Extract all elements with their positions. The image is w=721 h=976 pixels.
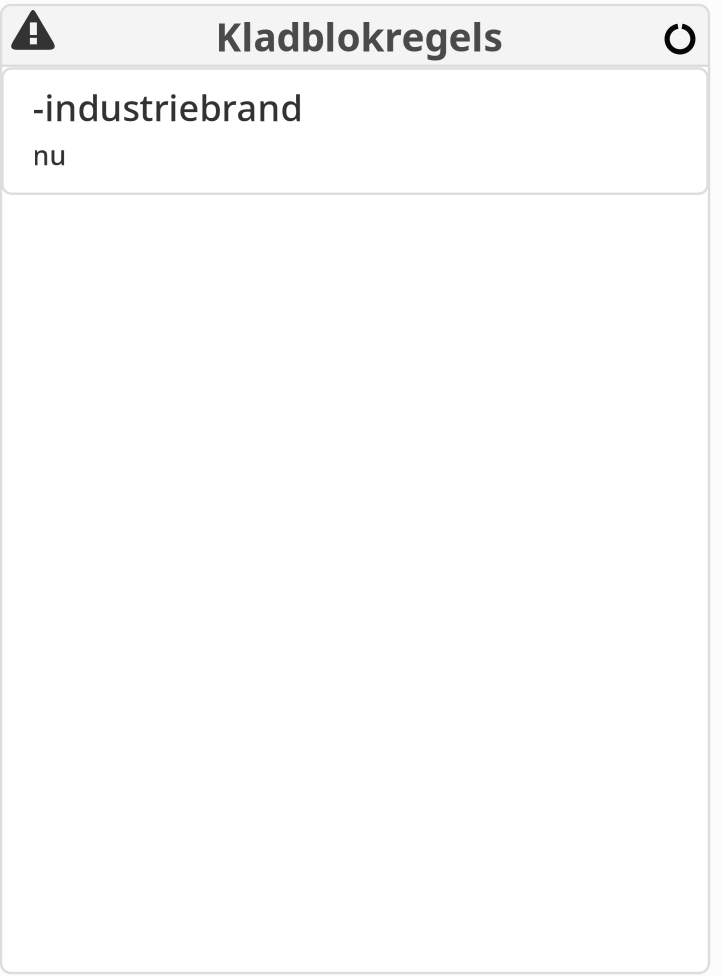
staticText: nu	[32, 137, 66, 173]
staticText: -industriebrand	[32, 83, 302, 131]
button[interactable]: -industriebrand	[1, 67, 709, 194]
button[interactable]: Waarschuwing	[1, 5, 61, 67]
staticText: Kladblokregels	[215, 11, 502, 62]
button[interactable]: Vernieuwen	[651, 5, 709, 67]
